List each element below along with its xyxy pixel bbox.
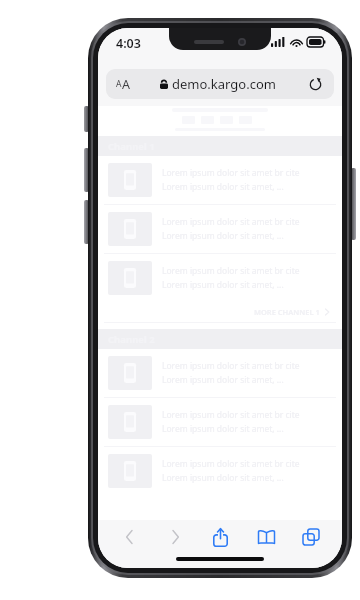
button[interactable]: Forward xyxy=(158,522,192,552)
staticText: demo.kargo.com xyxy=(172,75,276,93)
button[interactable]: Lorem ipsum dolor sit amet br cite xyxy=(98,349,342,397)
staticText: Lorem ipsum dolor sit amet br cite xyxy=(162,216,300,228)
button[interactable]: Bookmarks xyxy=(249,522,283,552)
staticText: 4:03 xyxy=(116,35,141,52)
button[interactable]: Lorem ipsum dolor sit amet br cite xyxy=(98,447,342,495)
button[interactable]: Share xyxy=(203,522,237,552)
staticText: Lorem ipsum dolor sit amet, ... xyxy=(162,472,284,484)
staticText: Lorem ipsum dolor sit amet, ... xyxy=(162,279,284,291)
staticText: Lorem ipsum dolor sit amet br cite xyxy=(162,360,300,372)
staticText: Lorem ipsum dolor sit amet, ... xyxy=(162,423,284,435)
staticText: MORE CHANNEL 1 xyxy=(254,307,320,317)
button[interactable]: Back xyxy=(112,522,146,552)
staticText: A xyxy=(122,76,130,93)
staticText: Lorem ipsum dolor sit amet, ... xyxy=(162,181,284,193)
button[interactable]: Lorem ipsum dolor sit amet br cite xyxy=(98,254,342,302)
staticText: A xyxy=(116,78,122,90)
staticText: Lorem ipsum dolor sit amet br cite xyxy=(162,409,300,421)
staticText: Lorem ipsum dolor sit amet, ... xyxy=(162,374,284,386)
staticText: Lorem ipsum dolor sit amet br cite xyxy=(162,167,300,179)
button[interactable]: Lorem ipsum dolor sit amet br cite xyxy=(98,156,342,204)
button[interactable]: A xyxy=(106,69,334,99)
button[interactable]: Reload xyxy=(306,75,324,93)
button[interactable]: Lorem ipsum dolor sit amet br cite xyxy=(98,205,342,253)
staticText: Lorem ipsum dolor sit amet br cite xyxy=(162,265,300,277)
staticText: Lorem ipsum dolor sit amet, ... xyxy=(162,230,284,242)
button[interactable]: Lorem ipsum dolor sit amet br cite xyxy=(98,398,342,446)
staticText: Lorem ipsum dolor sit amet br cite xyxy=(162,458,300,470)
button[interactable]: Tabs xyxy=(294,522,328,552)
